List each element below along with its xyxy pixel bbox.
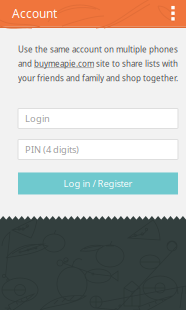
staticText: PIN (4 digits) xyxy=(25,143,79,156)
button[interactable]: More options xyxy=(161,0,185,27)
button[interactable]: Log in / Register xyxy=(18,172,178,194)
staticText: Login xyxy=(25,112,50,125)
staticText: Log in / Register xyxy=(63,177,132,190)
staticText: Account xyxy=(12,5,57,21)
staticText: Use the same account on multiple phones … xyxy=(18,44,178,83)
